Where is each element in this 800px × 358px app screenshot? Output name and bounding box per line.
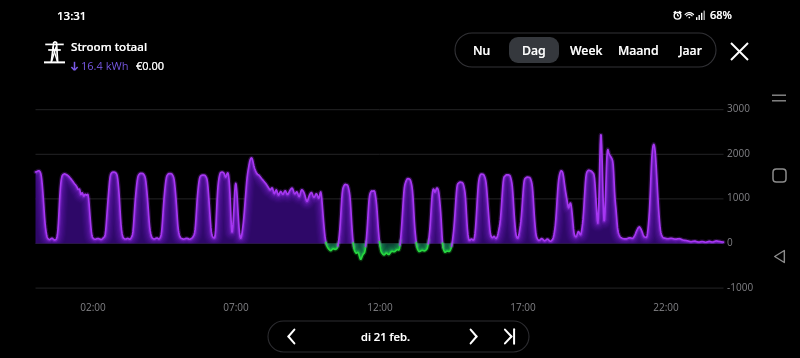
staticText: Maand [618, 42, 659, 59]
button[interactable]: Vorige dag [268, 321, 314, 352]
staticText: Jaar [679, 42, 702, 59]
button[interactable]: Recente apps [766, 85, 792, 111]
button[interactable]: Week [561, 37, 611, 63]
staticText: 02:00 [76, 300, 110, 314]
staticText: Week [570, 42, 603, 59]
button[interactable]: Dag [509, 37, 559, 63]
staticText: 22:00 [649, 300, 683, 314]
staticText: -1000 [727, 280, 754, 294]
button[interactable]: Nu [456, 37, 507, 63]
staticText: 07:00 [219, 300, 253, 314]
staticText: 2000 [727, 146, 750, 160]
staticText: 68% [710, 7, 732, 22]
staticText: Nu [473, 42, 491, 59]
staticText: 3000 [727, 101, 750, 115]
button[interactable]: Terug [766, 243, 792, 269]
button[interactable]: di 21 feb. [314, 321, 456, 352]
button[interactable]: Volgende dag [456, 321, 491, 352]
button[interactable]: Home [766, 162, 792, 188]
staticText: Dag [522, 42, 546, 59]
staticText: €0.00 [136, 58, 165, 73]
staticText: 17:00 [506, 300, 540, 314]
staticText: Stroom totaal [71, 39, 148, 55]
staticText: 13:31 [57, 8, 87, 24]
staticText: 16.4 kWh [81, 58, 129, 73]
staticText: di 21 feb. [361, 329, 410, 344]
staticText: 0 [727, 235, 733, 249]
button[interactable]: Laatste dag [491, 321, 529, 352]
staticText: 1000 [727, 190, 750, 204]
button[interactable]: Sluiten [724, 36, 754, 66]
button[interactable]: Maand [613, 37, 663, 63]
staticText: 12:00 [363, 300, 397, 314]
button[interactable]: Jaar [665, 37, 715, 63]
